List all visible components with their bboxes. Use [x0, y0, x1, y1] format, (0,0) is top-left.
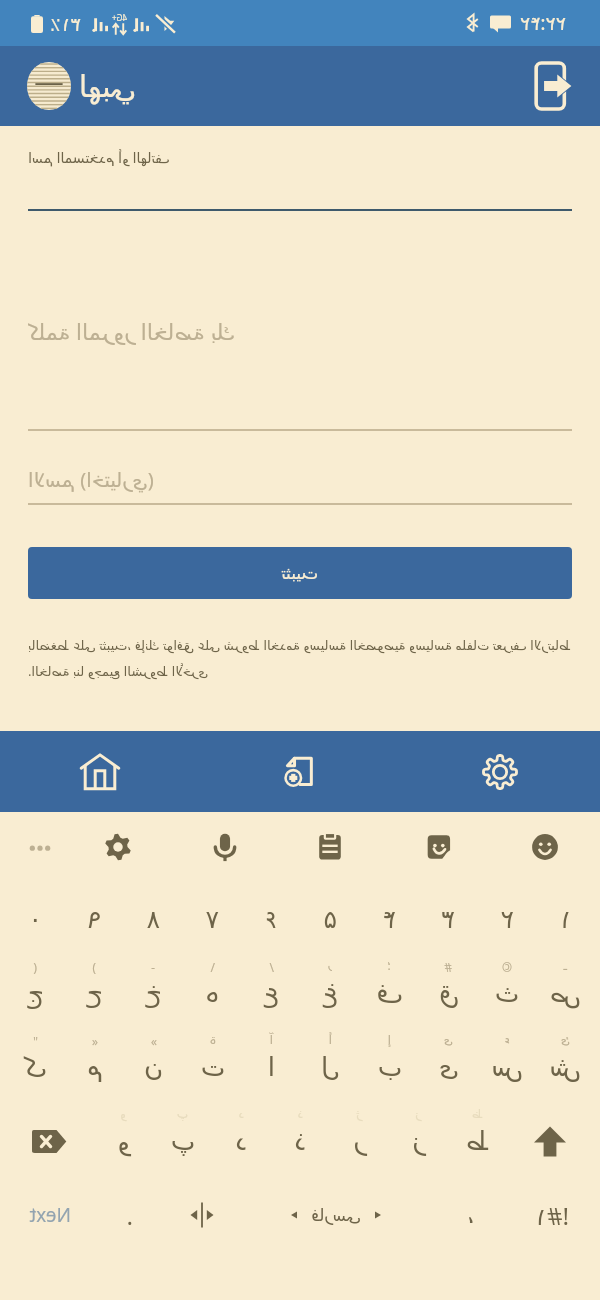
button[interactable]: /: [242, 956, 301, 1030]
staticText: ۴: [382, 905, 396, 934]
button[interactable]: Sign out: [526, 60, 578, 112]
staticText: ): [92, 959, 96, 975]
staticText: و: [117, 1126, 130, 1156]
staticText: ب: [377, 1052, 402, 1082]
staticText: ۵: [323, 905, 337, 934]
button[interactable]: Settings: [400, 731, 600, 812]
staticText: ز: [415, 1107, 421, 1121]
staticText: و: [120, 1107, 126, 1121]
staticText: ر: [353, 1126, 366, 1156]
button[interactable]: Home: [0, 731, 200, 812]
button[interactable]: !#۱: [509, 1178, 594, 1252]
button[interactable]: د: [212, 1104, 271, 1178]
button[interactable]: ©: [478, 956, 536, 1030]
staticText: ش: [549, 1052, 581, 1082]
staticText: ۹: [87, 905, 101, 934]
button[interactable]: ۶: [242, 882, 301, 956]
button[interactable]: New note: [200, 731, 400, 812]
button[interactable]: ة: [183, 1030, 242, 1104]
button[interactable]: More options: [16, 823, 64, 871]
button[interactable]: ۲: [478, 882, 536, 956]
staticText: ذ: [294, 1126, 306, 1156]
staticText: «: [91, 1033, 98, 1049]
button[interactable]: أ: [301, 1030, 360, 1104]
button[interactable]: ء: [478, 1030, 536, 1104]
button[interactable]: ۴: [360, 882, 419, 956]
button[interactable]: ۸: [124, 882, 183, 956]
button[interactable]: ؛: [360, 956, 419, 1030]
staticText: ©: [502, 959, 512, 975]
button[interactable]: (: [6, 956, 65, 1030]
button[interactable]: Emoji: [521, 823, 569, 871]
staticText: ۲: [500, 905, 514, 934]
button[interactable]: ): [65, 956, 124, 1030]
button[interactable]: ٫: [301, 956, 360, 1030]
button[interactable]: Move cursor: [165, 1178, 239, 1252]
staticText: د: [238, 1107, 244, 1121]
staticText: ة: [209, 1033, 216, 1047]
staticText: ژ: [356, 1107, 362, 1121]
staticText: ظ: [471, 1107, 483, 1121]
staticText: ث: [494, 978, 519, 1008]
button[interactable]: Stickers: [416, 823, 464, 871]
staticText: ف: [376, 978, 403, 1008]
button[interactable]: Voice input: [201, 823, 249, 871]
button[interactable]: Shift: [507, 1104, 594, 1178]
staticText: ۰: [28, 905, 42, 934]
staticText: \: [210, 959, 215, 975]
staticText: ط: [465, 1126, 490, 1156]
staticText: 4G+: [112, 12, 127, 23]
button[interactable]: ژ: [330, 1104, 389, 1178]
staticText: ص: [549, 978, 581, 1008]
button[interactable]: ۳: [419, 882, 478, 956]
staticText: ۳: [441, 905, 455, 934]
staticText: فارسی: [311, 1205, 361, 1225]
staticText: ى: [443, 1033, 453, 1047]
button[interactable]: ـ: [536, 956, 594, 1030]
staticText: س: [491, 1052, 523, 1082]
staticText: اسم المستخدم أو الهاتف: [28, 148, 572, 167]
staticText: ۲۲:۴۲: [520, 10, 566, 36]
button[interactable]: ۵: [301, 882, 360, 956]
button[interactable]: إ: [360, 1030, 419, 1104]
button[interactable]: ز: [389, 1104, 448, 1178]
staticText: -: [151, 959, 155, 975]
button[interactable]: ذ: [271, 1104, 330, 1178]
staticText: ؛: [387, 959, 391, 973]
button[interactable]: \: [183, 956, 242, 1030]
button[interactable]: ،: [433, 1178, 509, 1252]
staticText: ۷: [205, 905, 219, 934]
staticText: ئ: [560, 1033, 570, 1047]
button[interactable]: ۱: [536, 882, 594, 956]
button[interactable]: ى: [419, 1030, 478, 1104]
staticText: پ: [176, 1107, 188, 1121]
button[interactable]: «: [65, 1030, 124, 1104]
button[interactable]: ": [6, 1030, 65, 1104]
staticText: د: [235, 1126, 247, 1156]
button[interactable]: #: [419, 956, 478, 1030]
button[interactable]: ۰: [6, 882, 65, 956]
button[interactable]: .: [94, 1178, 165, 1252]
button[interactable]: تثبيت: [28, 547, 572, 599]
staticText: /: [269, 959, 274, 975]
staticText: ن: [143, 1052, 163, 1082]
button[interactable]: -: [124, 956, 183, 1030]
button[interactable]: Clipboard: [306, 823, 354, 871]
staticText: غ: [322, 978, 338, 1008]
button[interactable]: Delete: [6, 1104, 94, 1178]
button[interactable]: ۹: [65, 882, 124, 956]
button[interactable]: ظ: [448, 1104, 507, 1178]
button[interactable]: ئ: [536, 1030, 594, 1104]
staticText: تثبيت: [281, 563, 318, 583]
button[interactable]: لهبي: [27, 62, 136, 110]
button[interactable]: پ: [153, 1104, 212, 1178]
button[interactable]: و: [94, 1104, 153, 1178]
button[interactable]: فارسی: [239, 1178, 433, 1252]
button[interactable]: Keyboard settings: [94, 823, 142, 871]
staticText: (: [33, 959, 37, 975]
button[interactable]: ۷: [183, 882, 242, 956]
button[interactable]: »: [124, 1030, 183, 1104]
staticText: م: [86, 1052, 103, 1082]
button[interactable]: آ: [242, 1030, 301, 1104]
button[interactable]: Next: [6, 1178, 94, 1252]
